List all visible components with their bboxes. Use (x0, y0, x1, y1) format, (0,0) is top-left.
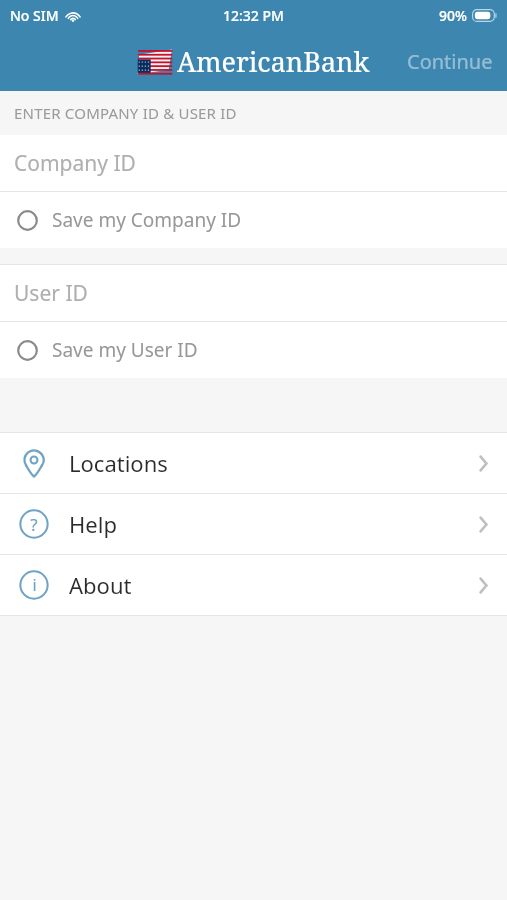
other: Help (19, 509, 49, 539)
staticText: Locations (69, 448, 168, 478)
staticText: About (69, 570, 132, 600)
button[interactable]: Help (0, 494, 507, 554)
button[interactable]: Save my Company ID (0, 192, 507, 248)
button[interactable]: User ID (0, 265, 507, 321)
staticText: 12:32 PM (223, 6, 284, 25)
button[interactable]: About (0, 555, 507, 615)
staticText: Help (69, 509, 117, 539)
staticText: Continue (407, 48, 493, 75)
button[interactable]: Save my User ID (0, 322, 507, 378)
other: Locations (19, 448, 49, 478)
staticText: AmericanBank (177, 43, 370, 80)
staticText: No SIM (10, 6, 59, 25)
staticText: Save my Company ID (52, 207, 242, 233)
staticText: ? (30, 513, 38, 536)
staticText: 90% (439, 6, 467, 25)
staticText: i (32, 574, 37, 596)
button[interactable]: Company ID (0, 135, 507, 191)
other: About (19, 570, 49, 600)
staticText: Company ID (14, 149, 136, 178)
staticText: ENTER COMPANY ID & USER ID (14, 103, 237, 123)
button[interactable]: Continue (393, 38, 507, 85)
staticText: User ID (14, 279, 88, 308)
staticText: Save my User ID (52, 337, 198, 363)
button[interactable]: Locations (0, 433, 507, 493)
